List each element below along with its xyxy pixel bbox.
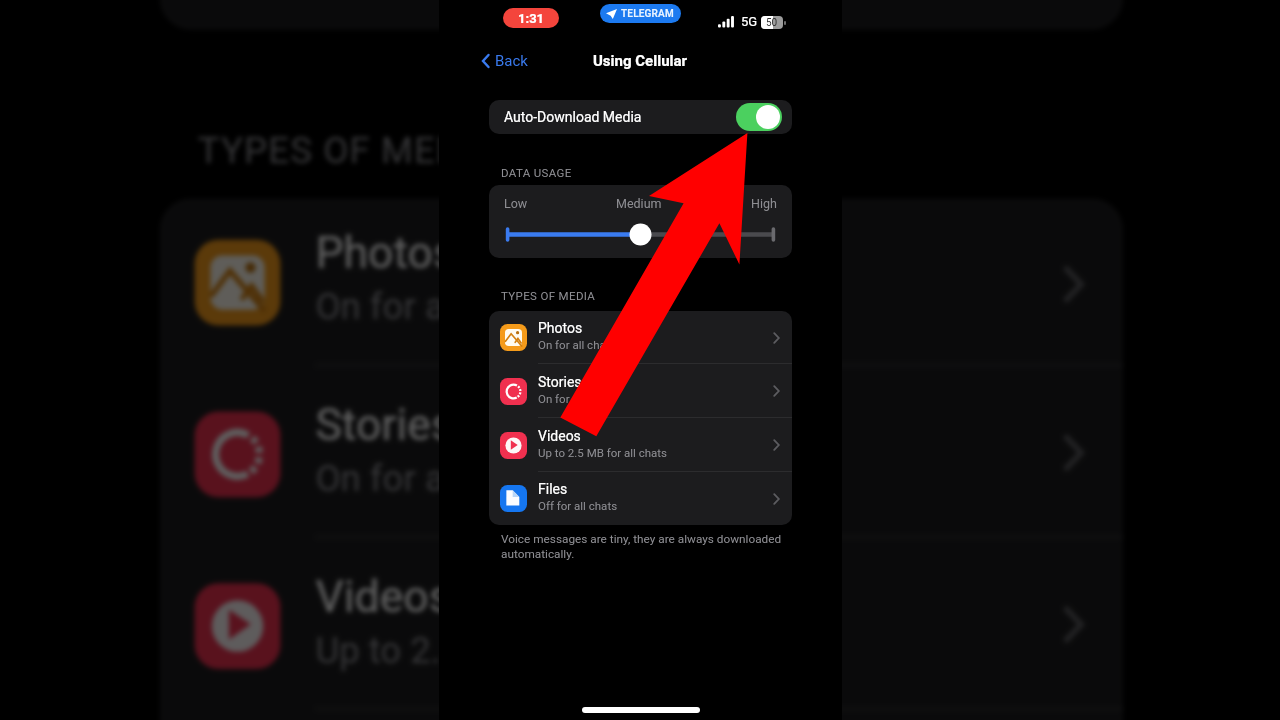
staticText: Voice messages are tiny, they are always…: [501, 532, 792, 561]
button[interactable]: Files: [160, 710, 1123, 720]
staticText: Files: [538, 481, 568, 497]
button[interactable]: Back: [439, 47, 538, 75]
staticText: High: [751, 196, 777, 211]
staticText: 5G: [741, 14, 758, 29]
staticText: Up to 2.5 MB for all chats: [315, 628, 729, 669]
button[interactable]: Stories: [160, 367, 1123, 539]
button[interactable]: [489, 185, 792, 258]
button[interactable]: Photos: [489, 311, 792, 364]
staticText: Up to 2.5 MB for all chats: [538, 446, 668, 459]
staticText: 50: [766, 17, 778, 29]
button[interactable]: Photos: [160, 198, 1123, 367]
staticText: Photos: [315, 227, 458, 278]
staticText: Videos: [315, 570, 452, 621]
staticText: On for all chats: [538, 392, 616, 405]
button[interactable]: Stories: [489, 364, 792, 418]
staticText: Using Cellular: [593, 52, 688, 70]
staticText: On for all chats: [315, 456, 563, 497]
staticText: 1:31: [518, 11, 545, 26]
button[interactable]: Files: [489, 472, 792, 525]
staticText: On for all chats: [538, 338, 616, 351]
staticText: Videos: [538, 428, 581, 444]
button[interactable]: Auto-Download Media, on: [736, 103, 782, 131]
button[interactable]: Auto-Download Media: [489, 100, 792, 134]
staticText: TYPES OF MEDIA: [198, 128, 500, 170]
staticText: TYPES OF MEDIA: [501, 289, 596, 302]
staticText: Photos: [538, 320, 583, 336]
staticText: TELEGRAM: [621, 8, 674, 20]
staticText: Auto-Download Media: [504, 109, 642, 125]
button[interactable]: Videos: [489, 418, 792, 472]
staticText: Low: [504, 196, 528, 211]
staticText: DATA USAGE: [501, 166, 572, 179]
button[interactable]: Videos: [160, 539, 1123, 710]
staticText: Back: [495, 52, 528, 70]
staticText: Stories: [315, 399, 455, 450]
staticText: On for all chats: [315, 284, 563, 325]
staticText: Medium: [616, 196, 662, 211]
staticText: Stories: [538, 374, 582, 390]
staticText: Off for all chats: [538, 499, 618, 512]
button[interactable]: [160, 0, 1123, 30]
